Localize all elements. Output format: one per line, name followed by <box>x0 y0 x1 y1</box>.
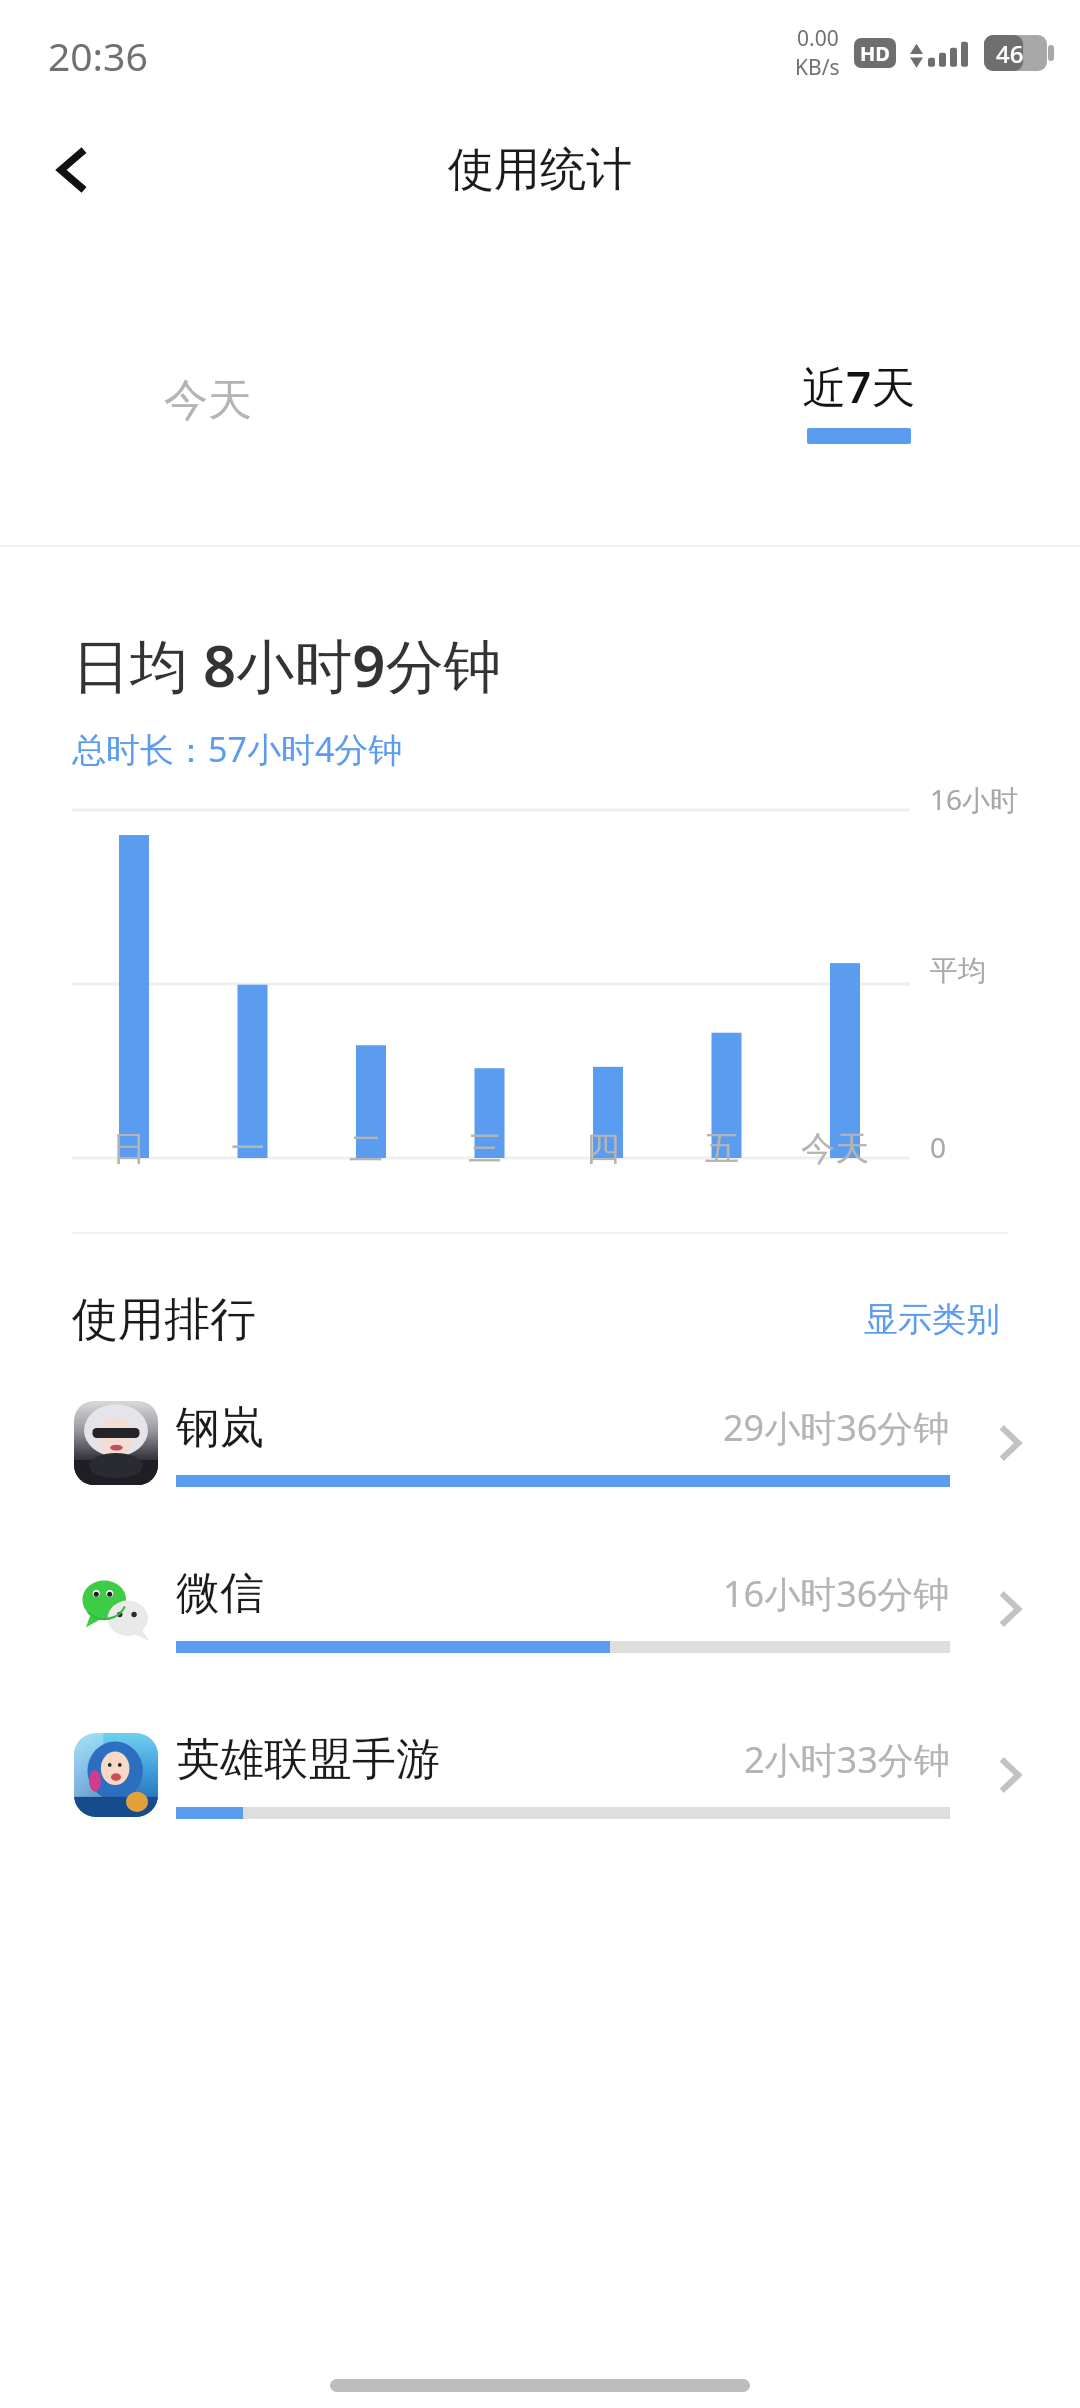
button[interactable]: 英雄联盟手游 <box>0 1731 1080 1819</box>
staticText: 一 <box>231 1127 265 1170</box>
staticText: 46 <box>996 37 1024 70</box>
staticText: 16小时36分钟 <box>723 1569 950 1618</box>
staticText: 29小时36分钟 <box>723 1403 950 1452</box>
staticText: 微信 <box>176 1566 264 1621</box>
staticText: 英雄联盟手游 <box>176 1732 440 1787</box>
staticText: 20:36 <box>48 29 148 82</box>
staticText: 近7天 <box>802 356 916 416</box>
other: 查看详情 <box>980 1579 1040 1639</box>
staticText: 三 <box>468 1127 502 1170</box>
button[interactable]: 近7天 <box>778 344 940 456</box>
staticText: 使用统计 <box>448 141 632 199</box>
other: 查看详情 <box>980 1413 1040 1473</box>
staticText: 今天 <box>164 373 252 428</box>
staticText: 16小时 <box>930 780 1019 818</box>
staticText: 四 <box>586 1127 620 1170</box>
button[interactable]: 今天 <box>140 355 276 446</box>
staticText: 二 <box>349 1127 383 1170</box>
button[interactable]: 显示类别 <box>856 1288 1008 1351</box>
other: 查看详情 <box>980 1745 1040 1805</box>
staticText: 0.00 <box>797 24 839 53</box>
button[interactable]: 钢岚 <box>0 1399 1080 1487</box>
staticText: KB/s <box>795 53 840 82</box>
staticText: 日均 8小时9分钟 <box>72 625 502 704</box>
staticText: 使用排行 <box>72 1291 256 1349</box>
button[interactable]: 返回 <box>30 128 114 212</box>
staticText: 五 <box>705 1127 739 1170</box>
button[interactable]: 微信 <box>0 1565 1080 1653</box>
staticText: 总时长：57小时4分钟 <box>72 726 403 772</box>
staticText: 2小时33分钟 <box>744 1735 950 1784</box>
staticText: 平均 <box>930 953 986 988</box>
staticText: 显示类别 <box>864 1298 1000 1341</box>
staticText: 钢岚 <box>176 1400 264 1455</box>
staticText: 日 <box>112 1127 146 1170</box>
staticText: 今天 <box>801 1127 869 1170</box>
staticText: HD <box>860 40 890 67</box>
staticText: 0 <box>930 1128 947 1166</box>
